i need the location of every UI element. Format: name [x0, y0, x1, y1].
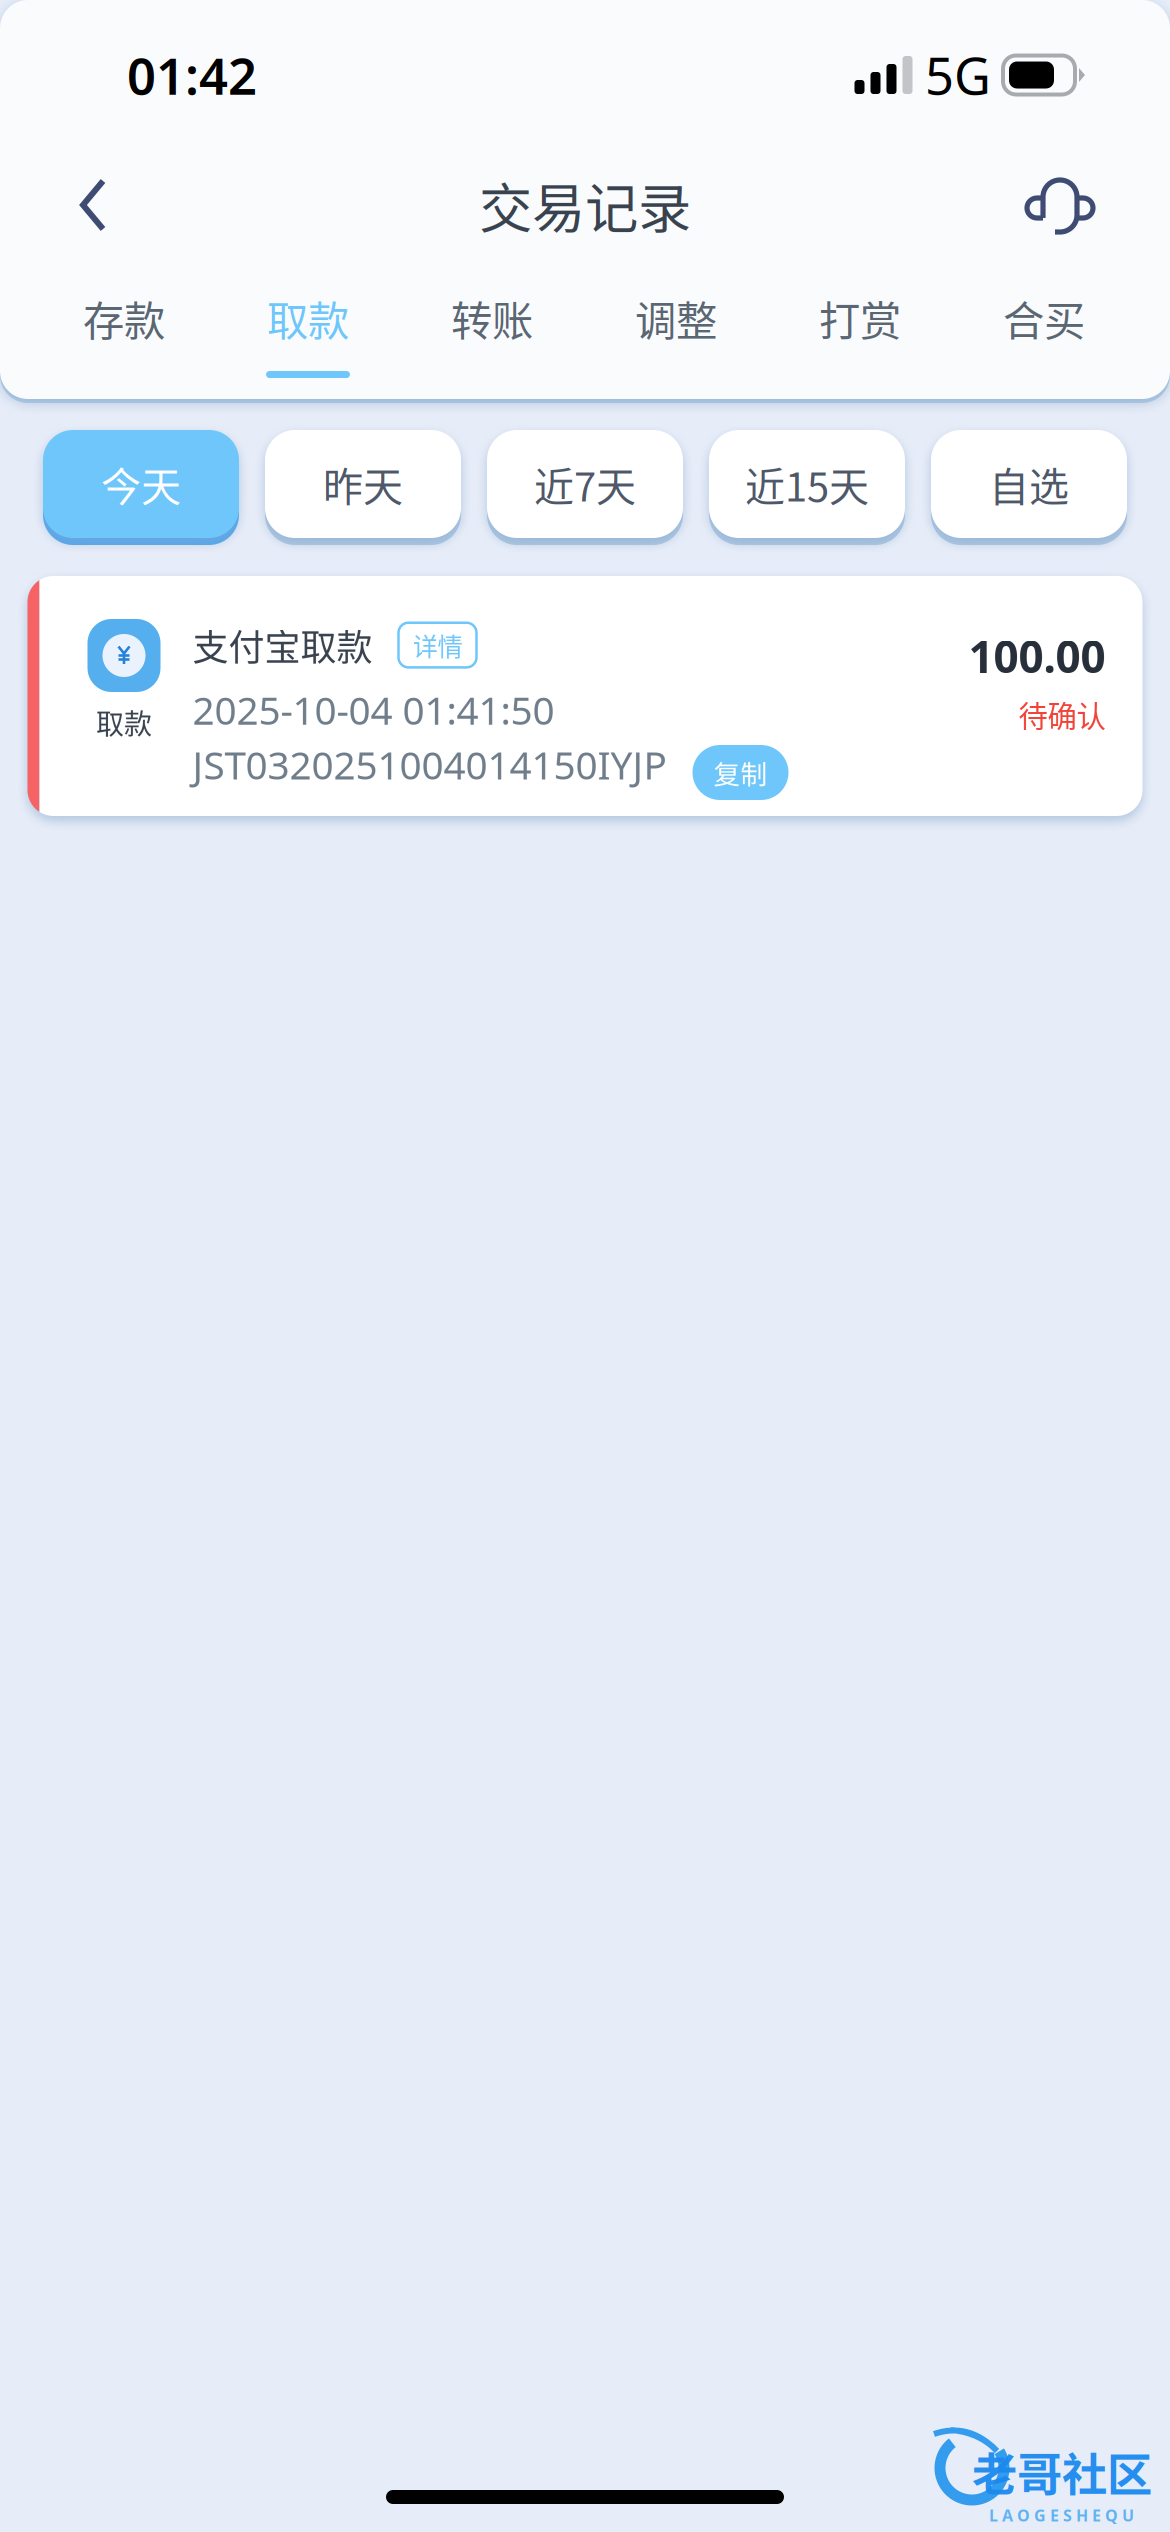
staticText: 打赏: [819, 288, 901, 348]
staticText: 自选: [989, 455, 1069, 513]
staticText: 01:42: [127, 41, 257, 109]
button[interactable]: 昨天: [265, 430, 461, 538]
staticText: 近15天: [745, 455, 869, 513]
button[interactable]: 近15天: [709, 430, 905, 538]
staticText: 详情: [412, 627, 462, 663]
staticText: JST0320251004014150IYJP: [192, 739, 666, 790]
staticText: 取款: [267, 288, 349, 348]
button[interactable]: 自选: [931, 430, 1127, 538]
button[interactable]: Customer support: [943, 150, 1093, 260]
button[interactable]: Back: [77, 150, 227, 260]
button[interactable]: 今天: [43, 430, 239, 538]
staticText: 取款: [96, 702, 152, 742]
staticText: 调整: [635, 288, 717, 348]
staticText: 支付宝取款: [192, 619, 372, 671]
button[interactable]: 复制: [692, 737, 788, 792]
button[interactable]: 近7天: [487, 430, 683, 538]
staticText: 老哥社区: [972, 2439, 1152, 2505]
staticText: 5G: [925, 41, 991, 109]
staticText: 交易记录: [479, 166, 691, 244]
button[interactable]: 调整: [584, 260, 768, 399]
staticText: 100.00: [968, 627, 1105, 685]
button[interactable]: 存款: [32, 260, 216, 399]
staticText: 2025-10-04 01:41:50: [192, 684, 554, 735]
staticText: 复制: [713, 753, 767, 792]
staticText: LAOGESHEQU: [989, 2505, 1134, 2526]
staticText: 今天: [101, 455, 181, 513]
staticText: 昨天: [323, 455, 403, 513]
button[interactable]: 合买: [952, 260, 1136, 399]
button[interactable]: 转账: [400, 260, 584, 399]
staticText: 转账: [451, 288, 533, 348]
button[interactable]: 打赏: [768, 260, 952, 399]
staticText: 存款: [83, 288, 165, 348]
staticText: 待确认: [1018, 693, 1105, 735]
button[interactable]: 取款: [216, 260, 400, 399]
staticText: 合买: [1003, 288, 1085, 348]
staticText: 近7天: [534, 455, 636, 513]
